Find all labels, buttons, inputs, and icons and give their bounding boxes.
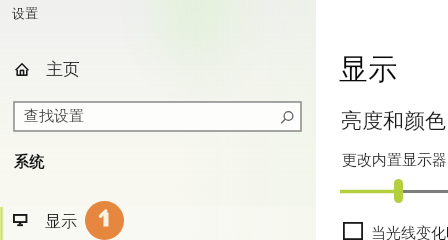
button[interactable]: Step 1 <box>85 201 124 240</box>
button[interactable]: 查找设置 <box>14 102 301 131</box>
staticText: 查找设置 <box>24 107 84 126</box>
button[interactable]: Brightness slider <box>394 179 403 203</box>
staticText: 显示 <box>45 212 77 232</box>
button[interactable]: 亮度和颜色 <box>341 108 446 134</box>
other: Search <box>279 109 295 125</box>
staticText: 当光线变化时 <box>371 224 448 240</box>
staticText: 主页 <box>46 59 80 80</box>
button[interactable]: 显示 <box>339 51 397 88</box>
button[interactable]: 设置 <box>12 5 38 21</box>
staticText: 更改内置显示器的 <box>342 151 448 170</box>
button[interactable]: 主页 <box>0 57 316 81</box>
button[interactable]: 系统 <box>14 153 44 172</box>
button[interactable]: 显示 <box>0 207 316 240</box>
button[interactable]: 当光线变化时 <box>316 222 448 240</box>
